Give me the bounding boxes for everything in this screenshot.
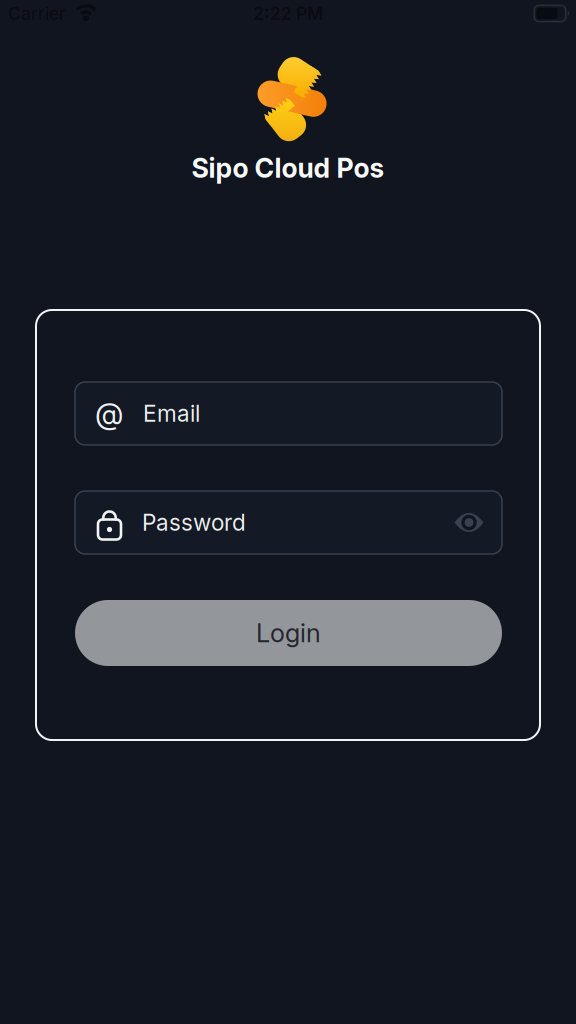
staticText: @	[95, 396, 123, 431]
staticText: 2:22 PM	[253, 3, 323, 24]
button[interactable]: Password	[75, 491, 502, 554]
staticText: Sipo Cloud Pos	[191, 152, 384, 184]
button[interactable]: @	[75, 382, 502, 445]
staticText: Login	[256, 618, 321, 648]
button[interactable]: Show password	[454, 512, 484, 533]
staticText: Email	[143, 400, 200, 427]
staticText: Carrier	[8, 3, 66, 24]
button[interactable]: Login	[75, 600, 502, 666]
staticText: Password	[142, 509, 246, 536]
